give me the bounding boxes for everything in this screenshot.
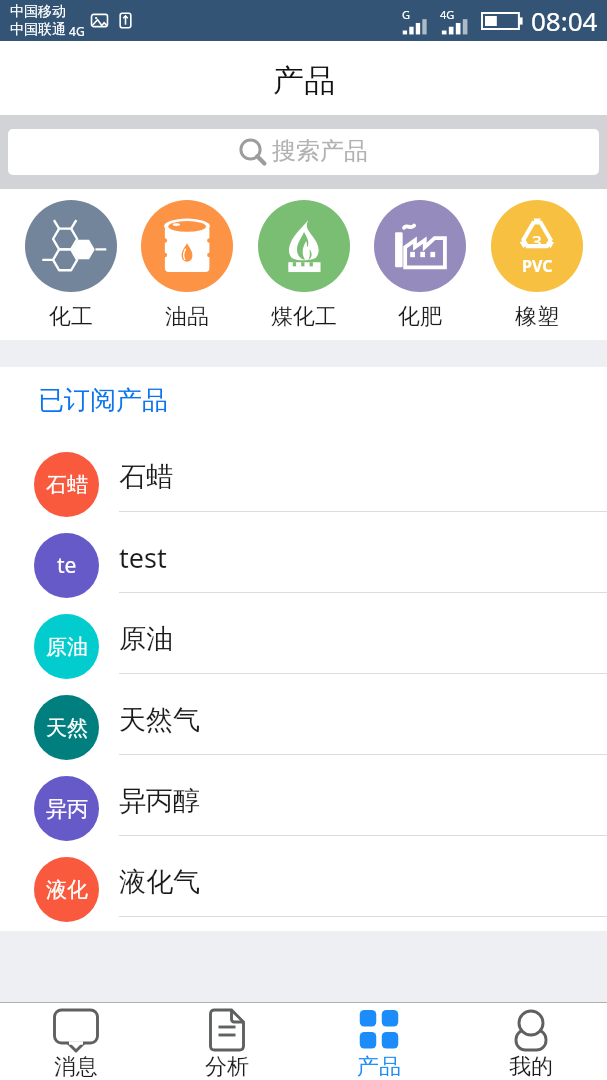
staticText: 煤化工	[271, 303, 337, 331]
staticText: 原油	[46, 634, 88, 660]
staticText: 中国移动	[10, 3, 66, 21]
staticText: PVC	[522, 255, 553, 277]
staticText: 产品	[357, 1053, 401, 1080]
button[interactable]: 液化	[0, 850, 607, 931]
staticText: 石蜡	[46, 472, 88, 498]
button[interactable]: 天然	[0, 688, 607, 769]
staticText: 化肥	[398, 303, 442, 331]
staticText: 搜索产品	[272, 136, 368, 166]
staticText: 我的	[509, 1053, 553, 1080]
button[interactable]: 煤化工	[258, 189, 350, 331]
staticText: test	[119, 539, 167, 576]
staticText: 天然	[46, 715, 88, 741]
staticText: 液化气	[119, 865, 200, 899]
staticText: 3	[532, 230, 542, 253]
staticText: 化工	[49, 303, 93, 331]
staticText: 原油	[119, 622, 173, 656]
button[interactable]: 产品	[303, 1003, 455, 1080]
staticText: te	[57, 551, 77, 580]
staticText: 4G	[440, 7, 455, 22]
staticText: 天然气	[119, 703, 200, 737]
staticText: 已订阅产品	[38, 384, 168, 417]
staticText: 中国联通	[10, 21, 66, 39]
button[interactable]: 我的	[455, 1003, 607, 1080]
staticText: 08:04	[531, 3, 598, 38]
staticText: 橡塑	[515, 303, 559, 331]
button[interactable]: 油品	[141, 189, 233, 331]
staticText: 产品	[273, 61, 335, 100]
staticText: 异丙醇	[119, 784, 200, 818]
staticText: 液化	[46, 877, 88, 903]
button[interactable]: 消息	[0, 1003, 151, 1080]
button[interactable]: 异丙	[0, 769, 607, 850]
staticText: 分析	[205, 1053, 249, 1080]
staticText: 油品	[165, 303, 209, 331]
staticText: 4G	[66, 23, 85, 39]
button[interactable]: 原油	[0, 607, 607, 688]
staticText: G	[402, 7, 411, 22]
button[interactable]: 3	[491, 189, 583, 331]
button[interactable]: 化工	[25, 189, 117, 331]
staticText: 消息	[54, 1053, 98, 1080]
button[interactable]: 化肥	[374, 189, 466, 331]
staticText: 异丙	[46, 796, 88, 822]
staticText: 石蜡	[119, 460, 173, 494]
button[interactable]: 分析	[151, 1003, 303, 1080]
button[interactable]: 石蜡	[0, 445, 607, 526]
button[interactable]: 搜索产品	[8, 129, 599, 175]
button[interactable]: te	[0, 526, 607, 607]
